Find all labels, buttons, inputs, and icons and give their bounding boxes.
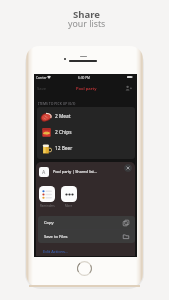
staticText: More — [65, 204, 73, 208]
staticText: Reminders — [40, 204, 55, 208]
button[interactable]: Save to Files — [38, 230, 135, 243]
staticText: A — [42, 169, 46, 176]
staticText: ITEMS TO PICK UP (0/3) — [38, 101, 76, 106]
button[interactable]: More — [61, 186, 77, 208]
staticText: your lists — [68, 18, 106, 30]
staticText: Save to Files — [44, 234, 68, 240]
button[interactable]: Copy — [38, 216, 135, 229]
button[interactable]: Close — [124, 164, 132, 172]
button[interactable]: 12 Beer — [37, 140, 135, 156]
staticText: 6:30 PM — [78, 76, 91, 80]
button[interactable]: Save — [37, 86, 47, 92]
staticText: 12 Beer — [55, 145, 73, 152]
staticText: Carrier — [36, 76, 47, 80]
button[interactable]: Edit Actions… — [43, 249, 69, 254]
staticText: Share — [73, 8, 101, 21]
button[interactable]: Reminders — [39, 186, 55, 208]
staticText: Pool party | Shared list... — [53, 169, 97, 174]
staticText: Copy — [44, 220, 54, 226]
staticText: Pool party — [76, 86, 97, 92]
button[interactable]: Add people — [125, 85, 132, 92]
button[interactable]: 2 Chips — [37, 124, 135, 140]
staticText: 2 Meat — [55, 113, 71, 120]
button[interactable]: 2 Meat — [37, 108, 135, 124]
staticText: 2 Chips — [55, 129, 72, 136]
